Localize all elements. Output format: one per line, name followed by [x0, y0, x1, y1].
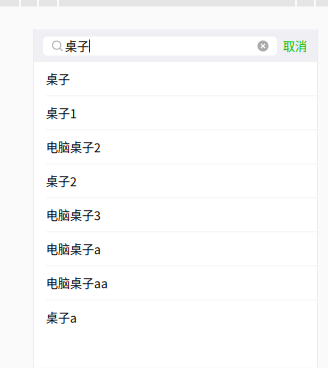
button[interactable]: Clear search text: [256, 39, 270, 53]
button[interactable]: 桌子: [34, 62, 317, 96]
staticText: 电脑桌子3: [46, 206, 101, 224]
button[interactable]: 桌子2: [34, 164, 317, 198]
button[interactable]: 电脑桌子aa: [34, 266, 317, 300]
button[interactable]: 电脑桌子2: [34, 130, 317, 164]
staticText: 桌子: [65, 37, 89, 55]
button[interactable]: 桌子1: [34, 96, 317, 130]
button[interactable]: 取消: [277, 36, 313, 55]
staticText: 桌子: [46, 70, 70, 88]
staticText: 桌子a: [46, 309, 77, 326]
staticText: 取消: [283, 37, 307, 55]
staticText: 电脑桌子aa: [46, 274, 108, 292]
staticText: 电脑桌子a: [46, 240, 101, 258]
button[interactable]: 桌子a: [34, 300, 317, 334]
staticText: 桌子1: [46, 104, 77, 122]
button[interactable]: 电脑桌子a: [34, 232, 317, 266]
staticText: 桌子2: [46, 172, 77, 190]
button[interactable]: 电脑桌子3: [34, 198, 317, 232]
staticText: 电脑桌子2: [46, 138, 101, 156]
